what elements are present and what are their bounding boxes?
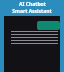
staticText: AI Chatbot [19, 1, 46, 8]
staticText: Smart Assistant [12, 8, 52, 15]
button[interactable] [37, 21, 60, 30]
